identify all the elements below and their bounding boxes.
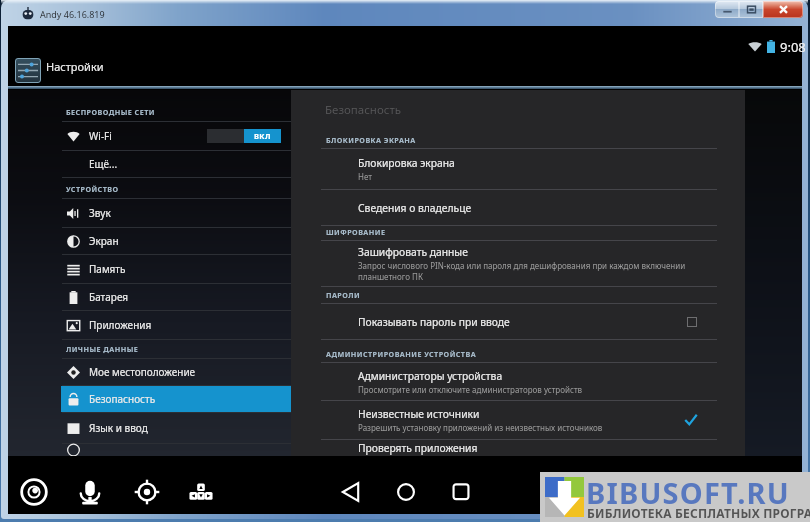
button[interactable]: Батарея [61, 284, 291, 310]
button[interactable]: Проверять приложения [291, 440, 745, 456]
staticText: Безопасность [89, 392, 156, 406]
staticText: Батарея [89, 290, 129, 304]
staticText: 9:08 [780, 38, 806, 54]
staticText: Сведения о владельце [358, 201, 472, 215]
button[interactable]: Recents [439, 468, 483, 516]
staticText: Wi-Fi [89, 129, 112, 143]
button[interactable]: Администраторы устройства [291, 363, 745, 401]
staticText: Настройки [46, 59, 104, 74]
staticText: Запрос числового PIN-кода или пароля для… [358, 260, 697, 282]
staticText: Звук [89, 206, 111, 220]
button[interactable]: Controls [179, 468, 223, 516]
button[interactable]: Screenshot [12, 468, 56, 516]
staticText: ПАРОЛИ [326, 290, 361, 300]
staticText: Память [89, 262, 126, 276]
staticText: ВКЛ [254, 131, 271, 141]
button[interactable]: Безопасность [61, 386, 291, 412]
button[interactable]: Ещё... [61, 151, 291, 177]
staticText: Показывать пароль при вводе [358, 315, 510, 329]
button[interactable]: Неизвестные источники [291, 401, 745, 440]
staticText: Приложения [89, 318, 152, 332]
staticText: БИБЛИОТЕКА БЕСПЛАТНЫХ ПРОГРАММ [587, 505, 810, 521]
staticText: Безопасность [325, 102, 402, 118]
button[interactable]: Мое местоположение [61, 359, 291, 385]
button[interactable]: Settings [15, 58, 41, 83]
staticText: Неизвестные источники [358, 407, 480, 421]
staticText: Andy 46.16.819 [40, 8, 105, 20]
button[interactable]: Память [61, 255, 291, 283]
staticText: Экран [89, 234, 119, 248]
staticText: Мое местоположение [89, 365, 196, 379]
button[interactable]: Блокировка экрана [291, 149, 745, 190]
button[interactable] [61, 444, 291, 456]
staticText: УСТРОЙСТВО [66, 184, 119, 194]
button[interactable]: Приложения [61, 311, 291, 339]
staticText: Зашифровать данные [358, 245, 468, 259]
button[interactable]: Показывать пароль при вводе [291, 304, 745, 340]
staticText: БЛОКИРОВКА ЭКРАНА [326, 135, 416, 145]
button[interactable]: Microphone [68, 468, 112, 516]
staticText: ЛИЧНЫЕ ДАННЫЕ [66, 344, 139, 354]
button[interactable]: Звук [61, 199, 291, 227]
staticText: Администраторы устройства [358, 369, 503, 383]
staticText: Проверять приложения [358, 441, 478, 455]
button[interactable]: Экран [61, 228, 291, 254]
staticText: Нет [358, 171, 372, 182]
button[interactable]: Язык и ввод [61, 413, 291, 443]
button[interactable]: Location [125, 468, 169, 516]
staticText: ШИФРОВАНИЕ [326, 227, 386, 237]
staticText: Блокировка экрана [358, 156, 455, 170]
button[interactable]: Minimize [715, 1, 739, 18]
button[interactable]: Maximize [739, 1, 763, 18]
staticText: Ещё... [89, 157, 118, 171]
staticText: БЕСПРОВОДНЫЕ СЕТИ [66, 107, 155, 117]
staticText: BIBUSOFT.RU [586, 473, 790, 512]
button[interactable]: Home [384, 468, 428, 516]
staticText: Разрешить установку приложений из неизве… [358, 422, 603, 433]
button[interactable]: Сведения о владельце [291, 190, 745, 226]
button[interactable]: Wi-Fi [61, 122, 291, 150]
button[interactable]: Back [329, 468, 373, 516]
button[interactable]: Close [763, 1, 803, 18]
staticText: АДМИНИСТРИРОВАНИЕ УСТРОЙСТВА [326, 349, 477, 359]
button[interactable]: Зашифровать данные [291, 241, 745, 287]
staticText: Просмотрите или отключите администраторо… [358, 384, 583, 395]
staticText: Язык и ввод [89, 421, 148, 435]
